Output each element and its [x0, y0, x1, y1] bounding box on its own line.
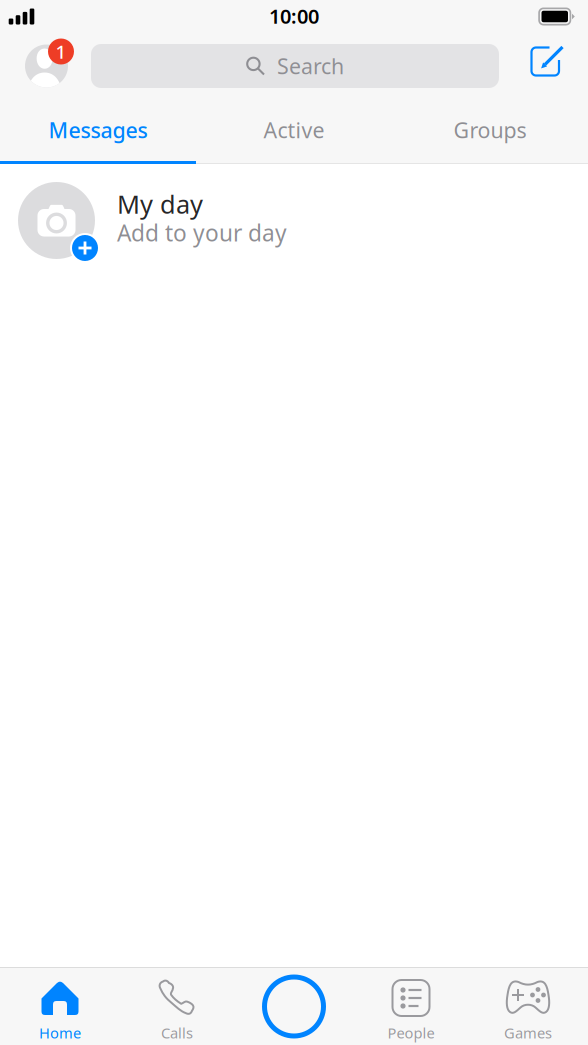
button[interactable]: Home: [1, 968, 118, 1045]
button[interactable]: Active: [196, 99, 392, 161]
staticText: Games: [504, 1023, 552, 1042]
button[interactable]: Search: [91, 44, 499, 88]
staticText: Active: [263, 116, 324, 144]
staticText: Messages: [48, 116, 147, 144]
staticText: Search: [277, 52, 344, 80]
button[interactable]: Profile: [0, 33, 91, 99]
button[interactable]: Groups: [392, 99, 588, 161]
staticText: Home: [39, 1023, 81, 1042]
staticText: Groups: [453, 116, 526, 144]
button[interactable]: People: [352, 968, 469, 1045]
staticText: Add to your day: [117, 218, 287, 248]
button[interactable]: New message: [499, 33, 588, 99]
staticText: Calls: [161, 1023, 193, 1042]
staticText: My day: [117, 187, 203, 221]
button[interactable]: Messages: [0, 99, 196, 161]
button[interactable]: Calls: [118, 968, 235, 1045]
staticText: 1: [55, 39, 66, 64]
staticText: 10:00: [269, 3, 319, 29]
button[interactable]: My day: [0, 164, 588, 282]
button[interactable]: Games: [469, 968, 586, 1045]
staticText: People: [387, 1023, 434, 1042]
button[interactable]: Camera: [235, 968, 352, 1045]
